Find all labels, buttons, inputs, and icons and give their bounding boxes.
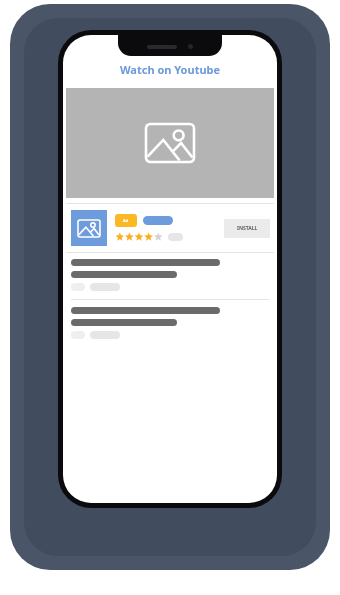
staticText: INSTALL: [237, 225, 258, 232]
button[interactable]: INSTALL: [224, 219, 270, 238]
button[interactable]: Ad: [66, 210, 274, 246]
button[interactable]: Video thumbnail: [66, 88, 274, 198]
button[interactable]: Watch on Youtube: [63, 62, 277, 77]
staticText: Ad: [123, 218, 129, 223]
